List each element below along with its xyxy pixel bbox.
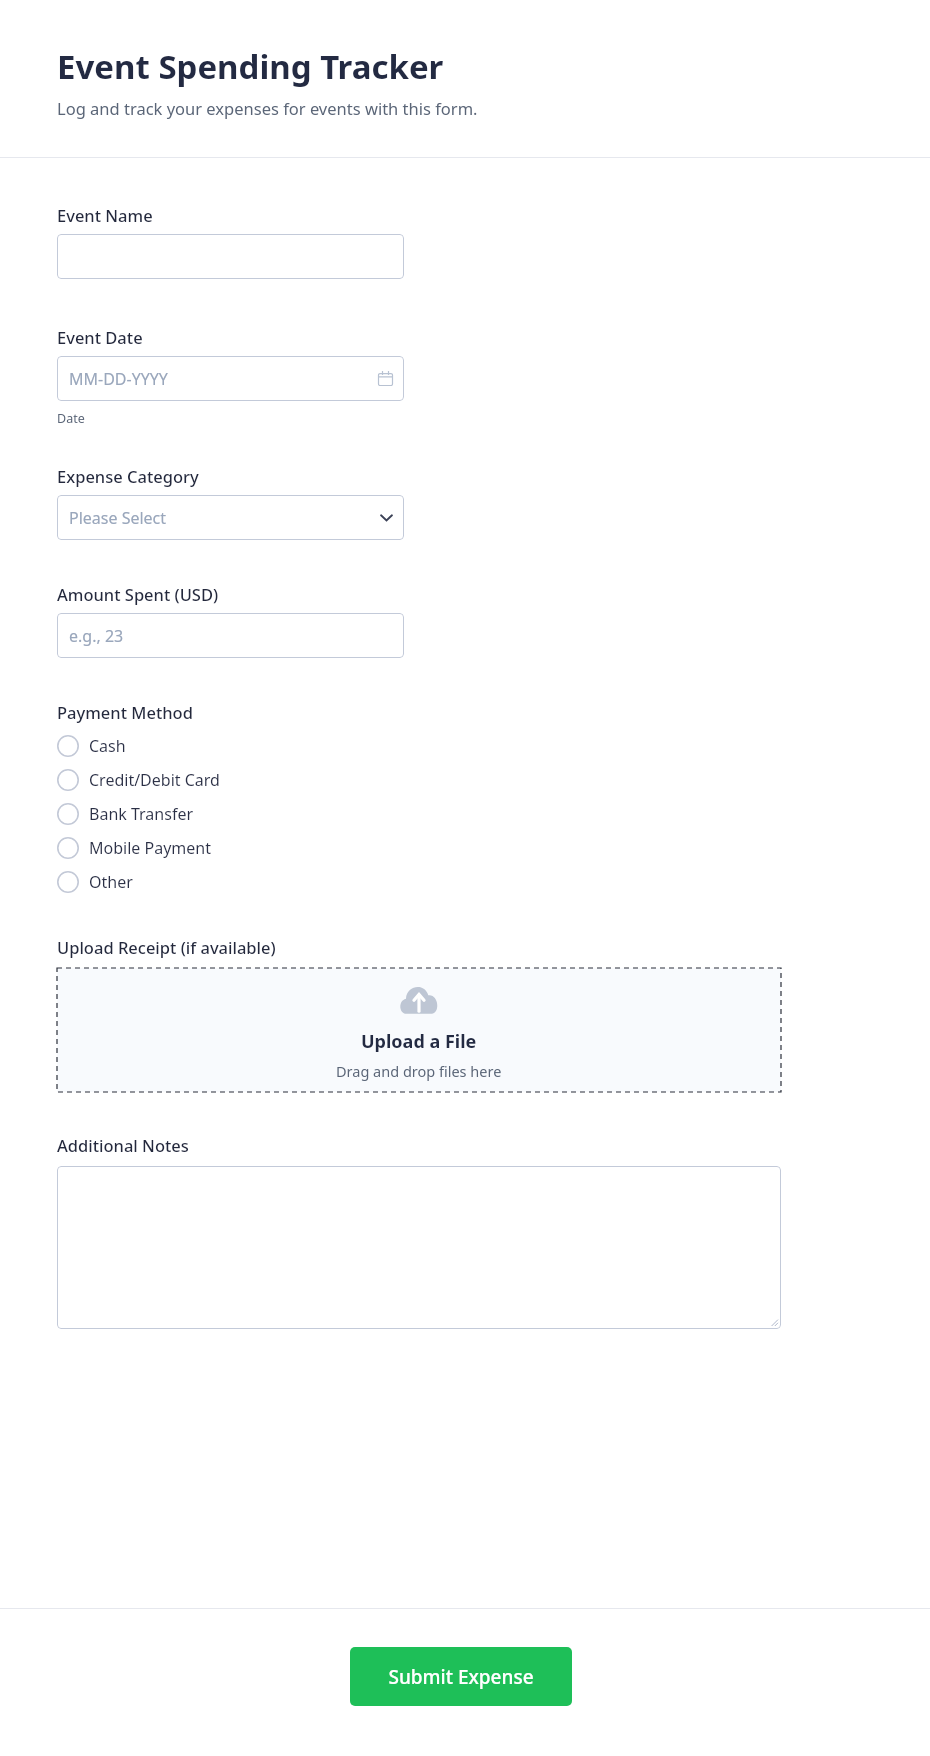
button[interactable]: Please Select [57,495,404,540]
staticText: Log and track your expenses for events w… [57,97,478,119]
staticText: Credit/Debit Card [89,769,220,791]
button[interactable]: Credit/Debit Card [57,763,417,797]
button[interactable]: Cash [57,729,417,763]
staticText: Other [89,871,133,893]
staticText: Event Date [57,326,143,348]
staticText: Cash [89,735,126,757]
button[interactable] [57,234,404,279]
staticText: Event Name [57,204,153,226]
staticText: Please Select [69,507,167,529]
button[interactable]: Submit Expense [350,1647,572,1706]
button[interactable]: MM-DD-YYYY [57,356,404,401]
button[interactable] [57,1166,781,1329]
button[interactable]: Bank Transfer [57,797,417,831]
staticText: Event Spending Tracker [57,44,444,89]
staticText: Expense Category [57,465,199,487]
staticText: Submit Expense [388,1664,534,1690]
staticText: Payment Method [57,701,193,723]
staticText: Date [57,410,85,427]
staticText: Drag and drop files here [336,1061,502,1081]
staticText: Bank Transfer [89,803,194,825]
staticText: Additional Notes [57,1134,189,1156]
staticText: e.g., 23 [69,625,124,647]
staticText: Upload Receipt (if available) [57,936,276,958]
button[interactable]: e.g., 23 [57,613,404,658]
staticText: Upload a File [361,1029,477,1054]
button[interactable]: Upload a File [57,968,781,1092]
staticText: MM-DD-YYYY [69,368,168,390]
button[interactable]: Mobile Payment [57,831,417,865]
staticText: Mobile Payment [89,837,211,859]
staticText: Amount Spent (USD) [57,583,219,605]
button[interactable]: Other [57,865,417,899]
